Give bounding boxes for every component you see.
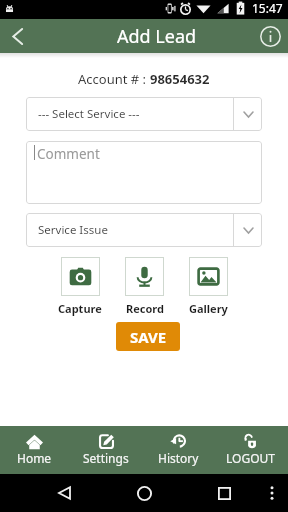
button[interactable]: SAVE bbox=[116, 322, 180, 351]
staticText: History bbox=[158, 450, 199, 466]
staticText: Add Lead bbox=[117, 24, 197, 49]
button[interactable]: Service Issue bbox=[26, 213, 262, 247]
staticText: --- Select Service --- bbox=[38, 106, 233, 122]
button[interactable] bbox=[125, 257, 164, 296]
button[interactable]: Home bbox=[130, 479, 158, 507]
button[interactable] bbox=[61, 257, 100, 296]
button[interactable]: Recent apps bbox=[210, 479, 238, 507]
button[interactable] bbox=[189, 257, 228, 296]
button[interactable]: Home bbox=[0, 426, 72, 474]
button[interactable]: History bbox=[144, 426, 216, 474]
button[interactable]: --- Select Service --- bbox=[26, 97, 262, 131]
staticText: 15:47 bbox=[252, 0, 283, 16]
staticText: Account # : bbox=[78, 70, 150, 88]
staticText: Capture bbox=[58, 301, 102, 316]
staticText: Gallery bbox=[189, 301, 228, 316]
button[interactable]: Settings bbox=[72, 426, 144, 474]
staticText: Comment bbox=[37, 145, 100, 163]
button[interactable]: LOGOUT bbox=[216, 426, 288, 474]
staticText: LOGOUT bbox=[226, 450, 275, 466]
button[interactable]: Info bbox=[258, 24, 282, 48]
staticText: 98654632 bbox=[150, 70, 210, 88]
staticText: Service Issue bbox=[38, 222, 233, 238]
staticText: Record bbox=[126, 301, 164, 316]
button[interactable]: More options bbox=[261, 482, 283, 504]
button[interactable]: Back bbox=[50, 479, 78, 507]
button[interactable]: Back bbox=[4, 23, 30, 49]
button[interactable]: Comment bbox=[26, 141, 262, 204]
staticText: Home bbox=[17, 450, 52, 466]
staticText: SAVE bbox=[130, 327, 167, 347]
staticText: Settings bbox=[83, 450, 129, 466]
